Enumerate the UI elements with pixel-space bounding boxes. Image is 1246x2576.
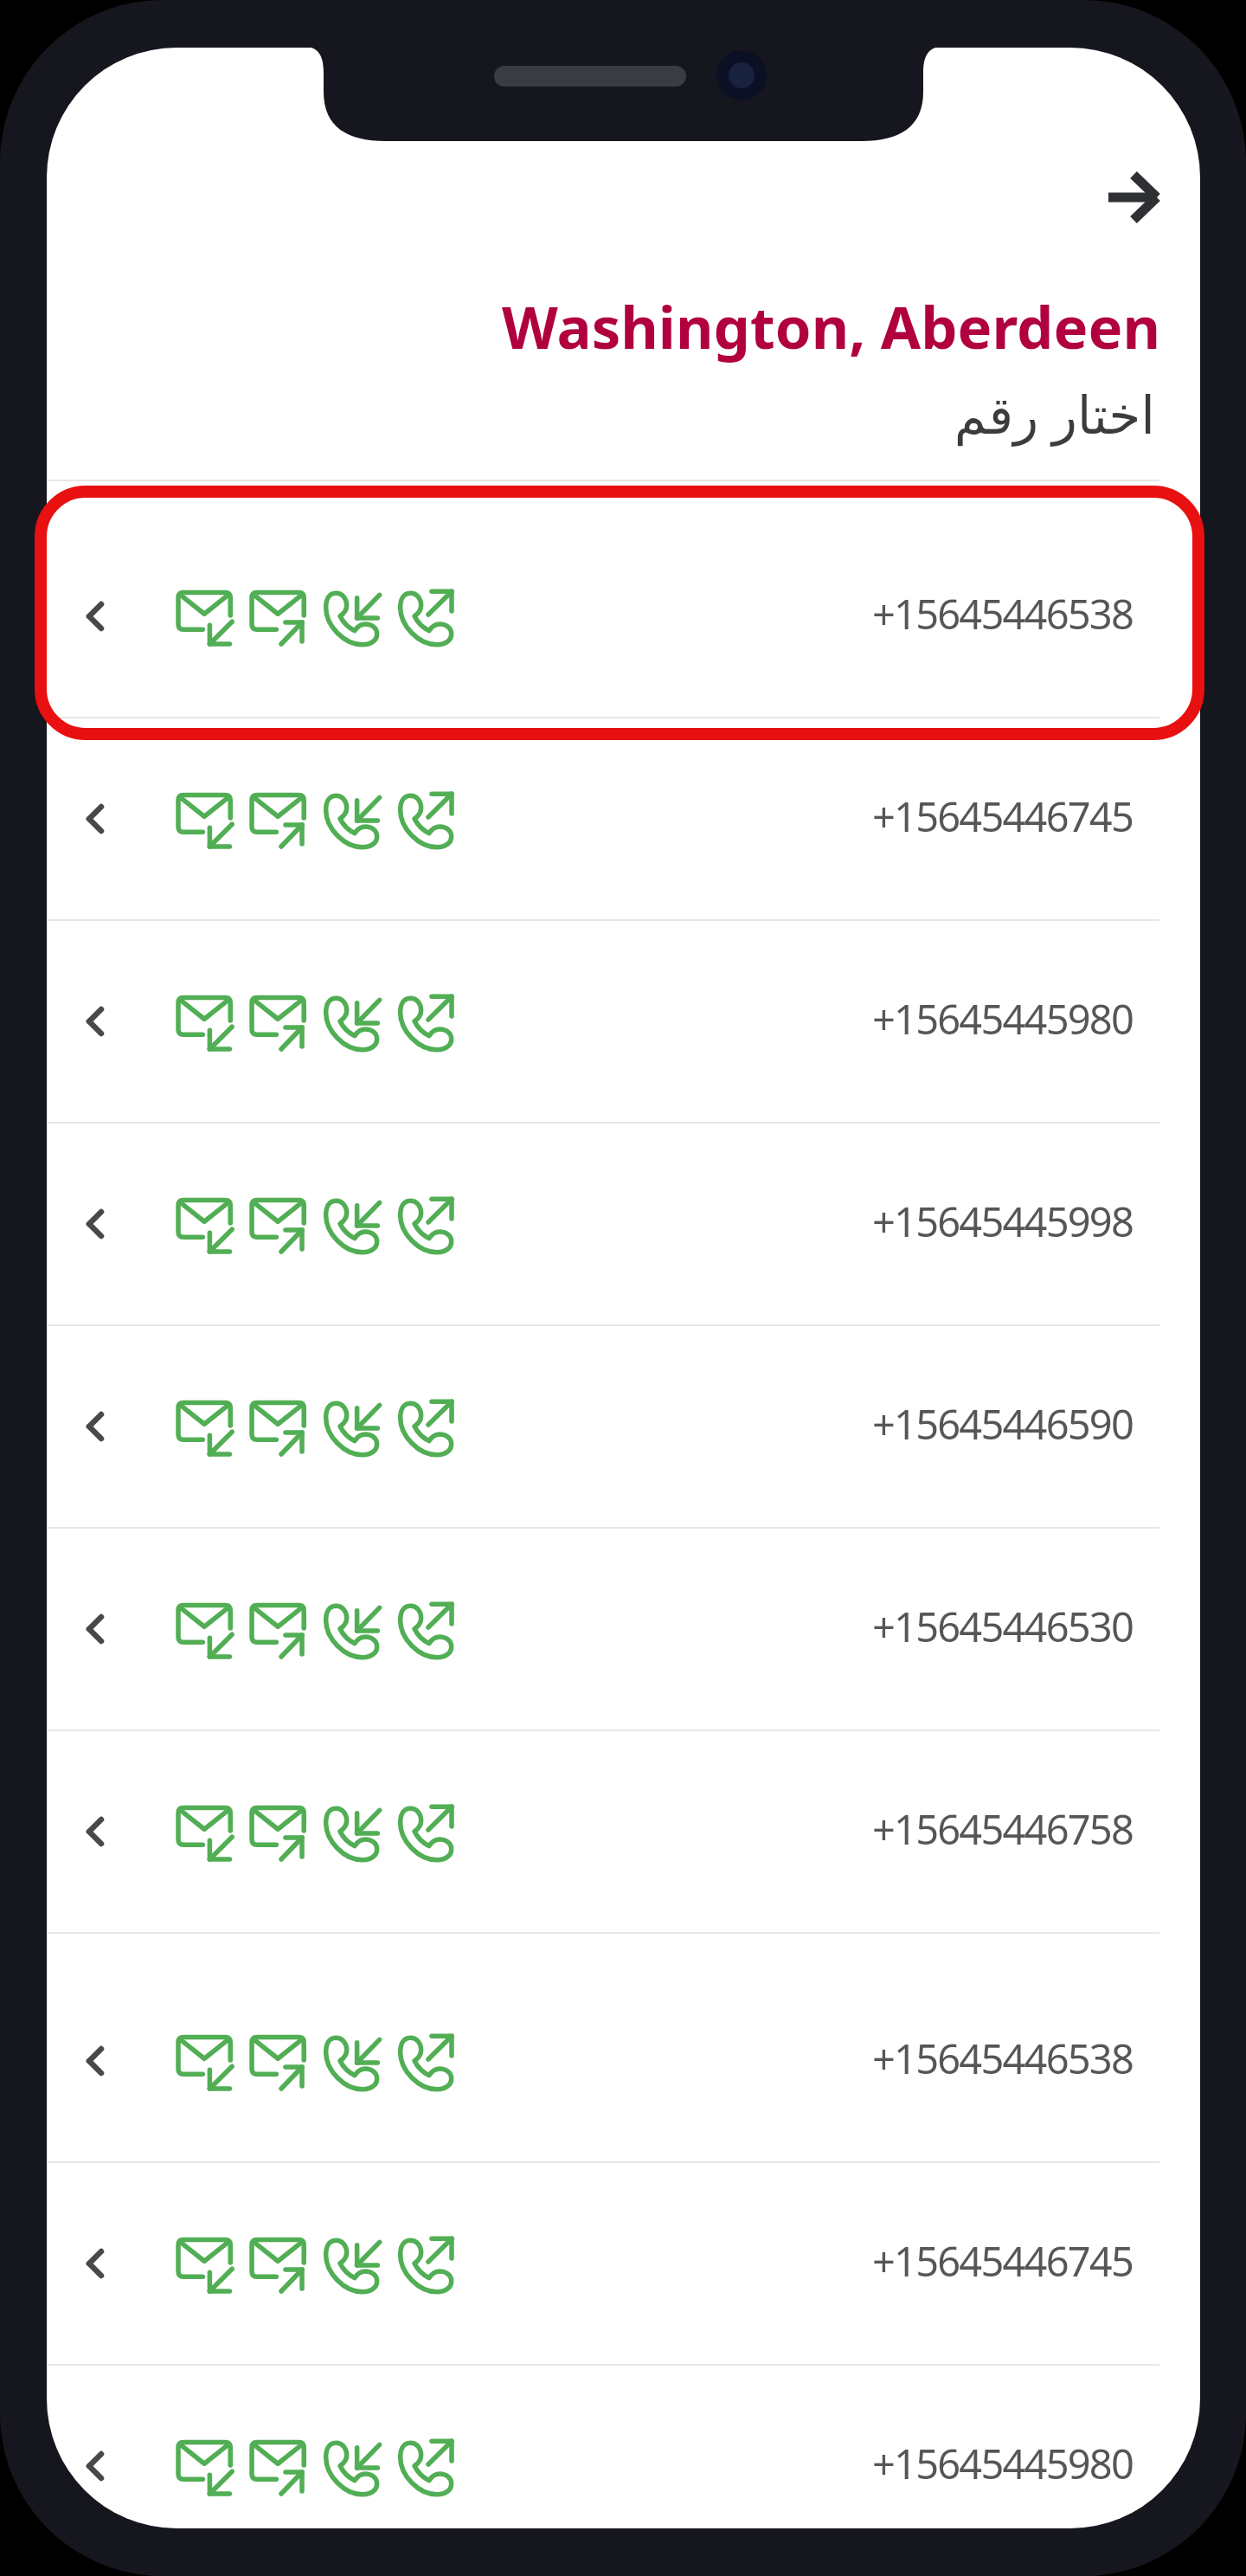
button[interactable]: +15645446538 bbox=[47, 516, 1200, 717]
staticText: +15645446530 bbox=[458, 1599, 1133, 1654]
staticText: +15645445980 bbox=[458, 991, 1133, 1046]
staticText: +15645446758 bbox=[458, 1801, 1133, 1857]
button[interactable]: +15645445998 bbox=[47, 1124, 1200, 1324]
staticText: +15645446745 bbox=[458, 2233, 1133, 2289]
staticText: +15645446538 bbox=[458, 2031, 1133, 2086]
button[interactable]: Next bbox=[1085, 158, 1200, 236]
button[interactable]: +15645446590 bbox=[47, 1326, 1200, 1527]
staticText: Washington, Aberdeen bbox=[47, 287, 1160, 365]
staticText: +15645446590 bbox=[458, 1396, 1133, 1452]
staticText: +15645445998 bbox=[458, 1194, 1133, 1249]
button[interactable]: +15645445980 bbox=[47, 921, 1200, 1122]
staticText: +15645446538 bbox=[458, 586, 1133, 641]
button[interactable]: +15645446538 bbox=[47, 1961, 1200, 2161]
staticText: +15645445980 bbox=[458, 2436, 1133, 2491]
button[interactable]: +15645446758 bbox=[47, 1731, 1200, 1932]
staticText: +15645446745 bbox=[458, 789, 1133, 844]
button[interactable]: +15645445980 bbox=[47, 2366, 1200, 2528]
button[interactable]: +15645446745 bbox=[47, 2163, 1200, 2364]
staticText: اختار رقم bbox=[47, 378, 1155, 449]
button[interactable]: +15645446530 bbox=[47, 1529, 1200, 1729]
button[interactable]: +15645446745 bbox=[47, 718, 1200, 919]
